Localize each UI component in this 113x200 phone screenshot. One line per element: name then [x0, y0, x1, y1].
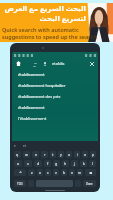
button[interactable]: s [24, 160, 32, 167]
button[interactable]: x [37, 169, 43, 176]
staticText: m [78, 170, 82, 175]
staticText: b [63, 170, 66, 175]
staticText: p [92, 152, 95, 157]
button[interactable]: ?123 [14, 180, 26, 187]
button[interactable]: l [89, 160, 96, 167]
staticText: ?123 [17, 182, 23, 186]
button[interactable]: t [50, 151, 56, 158]
staticText: l [92, 161, 93, 166]
staticText: l'établissement [18, 116, 47, 121]
button[interactable]: établissement des prix [12, 91, 98, 102]
button[interactable]: w [23, 151, 30, 158]
button[interactable]: a [14, 160, 22, 167]
staticText: Quick search with automatic [2, 26, 79, 33]
staticText: u [68, 152, 71, 157]
button[interactable]: c [45, 169, 51, 176]
staticText: t [52, 152, 54, 157]
staticText: f [47, 161, 49, 166]
staticText: s [27, 161, 29, 166]
staticText: البحث السريع مع العرض التلقائي [0, 4, 86, 14]
button[interactable]: e [32, 151, 39, 158]
staticText: o [84, 152, 87, 157]
staticText: a [17, 161, 19, 166]
staticText: g [55, 161, 58, 166]
button[interactable]: Voice search [41, 60, 49, 68]
button[interactable]: h [62, 160, 69, 167]
staticText: j [74, 161, 75, 166]
staticText: z [31, 170, 33, 175]
button[interactable]: y [58, 151, 64, 158]
button[interactable]: j [71, 160, 78, 167]
staticText: لتسريع البحث [39, 14, 86, 24]
button[interactable]: k [80, 160, 87, 167]
staticText: k [83, 161, 85, 166]
staticText: v [55, 170, 57, 175]
button[interactable]: Clear [88, 60, 96, 68]
staticText: suggestions to speed up the search [2, 33, 97, 40]
button[interactable]: n [69, 169, 75, 176]
button[interactable]: r [41, 151, 48, 158]
button[interactable]: o [82, 151, 88, 158]
button[interactable]: i [74, 151, 80, 158]
staticText: e [35, 152, 37, 157]
button[interactable]: p [90, 151, 96, 158]
staticText: e [14, 144, 16, 148]
button[interactable]: m [77, 169, 83, 176]
button[interactable]: d [34, 160, 42, 167]
button[interactable]: établissement [12, 69, 98, 80]
staticText: établissement [18, 105, 45, 110]
button[interactable]: z [28, 169, 35, 176]
button[interactable]: b [61, 169, 67, 176]
staticText: d [37, 161, 40, 166]
staticText: établissement hospitalier [18, 83, 66, 88]
staticText: Done [86, 182, 93, 186]
staticText: et [23, 144, 26, 148]
button[interactable]: f [44, 160, 51, 167]
staticText: FR [34, 61, 37, 64]
staticText: i [77, 152, 78, 157]
button[interactable]: u [66, 151, 72, 158]
button[interactable]: établissement hospitalier [12, 80, 98, 91]
staticText: n [71, 170, 74, 175]
button[interactable]: q [14, 151, 21, 158]
button[interactable]: établissement [12, 102, 98, 113]
staticText: établissement [18, 72, 45, 77]
staticText: y [60, 152, 62, 157]
button[interactable]: Home [14, 59, 23, 68]
staticText: w [25, 152, 28, 157]
staticText: établissement des prix [18, 94, 61, 99]
button[interactable]: Done [83, 180, 96, 187]
button[interactable]: v [53, 169, 59, 176]
staticText: r [44, 152, 46, 157]
button[interactable]: g [53, 160, 60, 167]
staticText: etablis [52, 61, 65, 66]
button[interactable]: Shift [14, 169, 26, 176]
button[interactable]: l'établissement [12, 113, 98, 124]
button[interactable]: Backspace [85, 169, 96, 176]
staticText: x [39, 170, 41, 175]
staticText: c [47, 170, 49, 175]
staticText: AR [33, 64, 37, 67]
staticText: q [16, 152, 19, 157]
staticText: h [64, 161, 67, 166]
